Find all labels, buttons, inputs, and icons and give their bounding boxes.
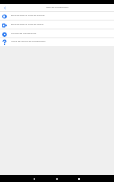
staticText: Acerca del Servicio de Transferencias — [11, 40, 46, 43]
button[interactable]: Envío de dinero a través de Oficina — [0, 20, 114, 29]
button[interactable]: Back — [30, 175, 37, 182]
button[interactable]: Consulta de Transferencias — [0, 29, 114, 38]
staticText: Consulta de Transferencias — [11, 32, 37, 35]
staticText: Envío de dinero a través de Internet — [11, 14, 45, 17]
button[interactable]: Acerca del Servicio de Transferencias — [0, 37, 114, 46]
button[interactable]: Recents — [75, 175, 82, 182]
button[interactable]: Envío de dinero a través de Internet — [0, 11, 114, 20]
button[interactable]: Back — [2, 5, 7, 10]
staticText: Menú de Transferencias — [46, 6, 69, 9]
staticText: Envío de dinero a través de Oficina — [11, 23, 44, 26]
button[interactable]: Home — [53, 175, 60, 182]
